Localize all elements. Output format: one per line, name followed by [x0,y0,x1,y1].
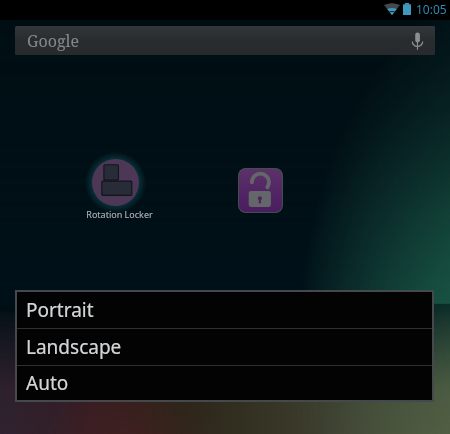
staticText: Rotation Locker [86,208,153,220]
button[interactable]: Portrait [17,292,432,328]
staticText: Auto [26,370,69,396]
button[interactable]: Rotation Locker [73,153,158,224]
button[interactable]: Landscape [17,329,432,365]
staticText: Portrait [26,297,94,323]
button[interactable]: Google [15,26,435,55]
staticText: Landscape [26,334,122,360]
button[interactable]: Rotation lock [238,168,283,213]
button[interactable]: Voice search [403,26,432,55]
staticText: 10:05 [416,1,447,17]
other: Wi-Fi [384,4,400,15]
staticText: Google [27,30,80,52]
button[interactable]: Auto [17,366,432,400]
